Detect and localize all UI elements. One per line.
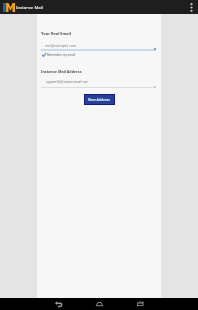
button[interactable]: Home bbox=[93, 298, 105, 310]
button[interactable]: Remember my email bbox=[42, 53, 76, 57]
button[interactable]: New Address bbox=[85, 95, 114, 104]
button[interactable]: More options bbox=[184, 0, 198, 14]
staticText: me@example.com bbox=[45, 43, 77, 48]
staticText: Instance Mail bbox=[16, 4, 43, 10]
button[interactable]: Back bbox=[52, 298, 64, 310]
staticText: New Address bbox=[88, 97, 111, 102]
staticText: Your Real Email bbox=[41, 31, 71, 36]
staticText: Remember my email bbox=[47, 53, 76, 57]
staticText: ugsam3b@instancemail.net bbox=[46, 80, 88, 84]
staticText: Instance Mail Address bbox=[41, 69, 82, 74]
button[interactable]: Recents bbox=[134, 298, 146, 310]
